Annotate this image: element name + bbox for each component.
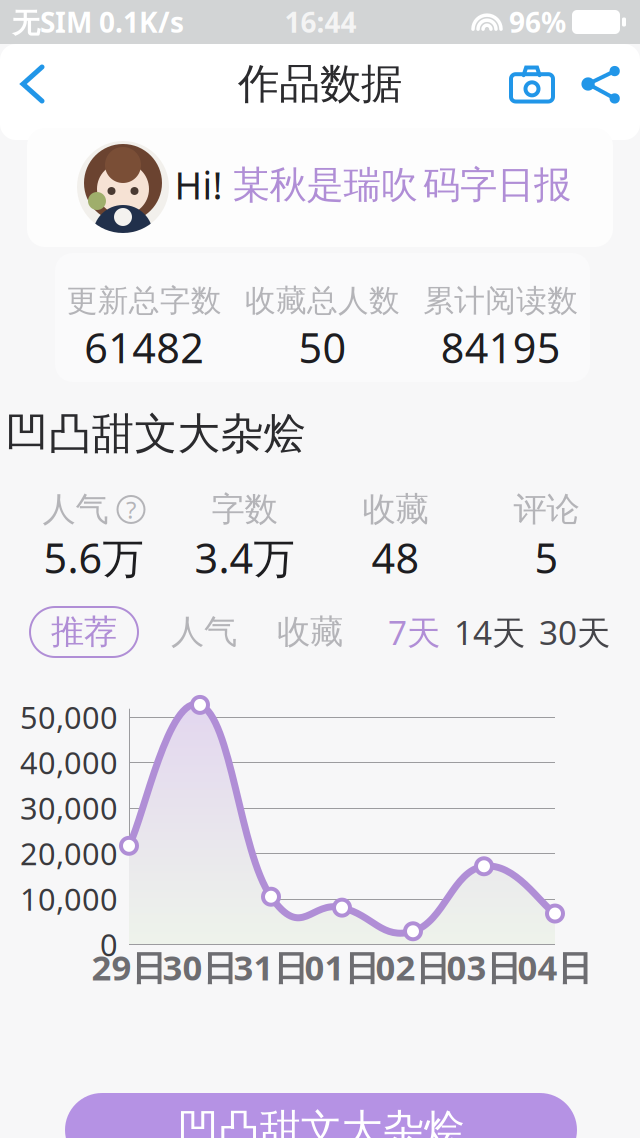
button[interactable]: 14天	[454, 607, 525, 657]
staticText: 人气	[171, 611, 237, 652]
staticText: 16:44	[284, 3, 356, 41]
staticText: 61482	[84, 320, 204, 375]
button[interactable]: 7天	[388, 607, 440, 657]
staticText: 无SIM 0.1K/s	[12, 3, 184, 41]
button[interactable]: Share	[568, 43, 640, 125]
staticText: 30,000	[20, 787, 118, 828]
staticText: 10,000	[20, 878, 118, 919]
staticText: ?	[126, 493, 136, 525]
staticText: 40,000	[20, 742, 118, 783]
staticText: 更新总字数	[67, 282, 222, 320]
staticText: 50,000	[20, 697, 118, 737]
staticText: 02日	[375, 944, 450, 990]
staticText: 收藏总人数	[245, 282, 400, 320]
staticText: 50	[298, 320, 346, 375]
staticText: 04日	[517, 944, 592, 990]
staticText: 29日	[91, 944, 166, 990]
staticText: 84195	[441, 320, 561, 375]
staticText: 30天	[539, 610, 610, 654]
button[interactable]: Back	[0, 45, 65, 123]
staticText: 96%	[509, 3, 566, 41]
staticText: 累计阅读数	[423, 282, 578, 320]
staticText: 14天	[454, 610, 525, 654]
staticText: 收藏	[277, 611, 343, 652]
button[interactable]: 30天	[539, 607, 610, 657]
staticText: 推荐	[51, 611, 117, 652]
button[interactable]: 收藏	[266, 607, 354, 657]
staticText: 5	[534, 530, 558, 585]
button[interactable]: Camera	[496, 44, 568, 123]
staticText: 0	[100, 924, 118, 965]
button[interactable]: 凹凸甜文大杂烩	[65, 1093, 577, 1138]
button[interactable]: Hi!	[27, 128, 613, 247]
staticText: 码字日报	[423, 162, 571, 208]
staticText: 作品数据	[238, 59, 402, 109]
staticText: 20,000	[20, 833, 118, 874]
staticText: 凹凸甜文大杂烩	[5, 408, 306, 460]
staticText: 01日	[304, 944, 379, 990]
staticText: 5.6万	[43, 530, 143, 585]
staticText: 7天	[388, 610, 440, 654]
button[interactable]: 推荐	[30, 607, 138, 657]
staticText: 人气	[42, 489, 108, 530]
staticText: 30日	[162, 944, 237, 990]
staticText: 48	[371, 530, 419, 585]
staticText: 收藏	[362, 489, 428, 530]
staticText: 03日	[446, 944, 521, 990]
staticText: 3.4万	[194, 530, 294, 585]
staticText: 评论	[513, 489, 579, 530]
staticText: 31日	[233, 944, 308, 990]
staticText: Hi!	[174, 160, 232, 210]
staticText: 凹凸甜文大杂烩	[177, 1105, 464, 1138]
staticText: 某秋是瑞吹	[232, 162, 417, 208]
staticText: 字数	[211, 489, 277, 530]
button[interactable]: 人气	[160, 607, 248, 657]
